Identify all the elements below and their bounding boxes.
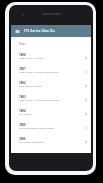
button[interactable]: 7401: [11, 65, 91, 79]
button[interactable]: 7403: [11, 93, 91, 107]
staticText: 7402: [19, 81, 26, 85]
button[interactable]: 7400: [11, 51, 91, 65]
staticText: Quad 2-input NAND gate, open collector: [19, 99, 59, 102]
staticText: 7400: [19, 53, 26, 57]
staticText: 7406: [19, 137, 26, 141]
staticText: Quad 2-input NAND gate: [19, 57, 44, 60]
button[interactable]: 7404: [11, 107, 91, 121]
staticText: 7403: [19, 95, 26, 99]
staticText: 7401: [19, 67, 26, 71]
staticText: Hex inverter buffer/driver: [19, 141, 45, 144]
staticText: TTL Series 74xx ICs: [24, 29, 55, 33]
staticText: 7405: [19, 123, 26, 127]
staticText: Hex inverter: [19, 113, 32, 116]
button[interactable]: 7402: [11, 79, 91, 93]
staticText: Quad 2-input NAND gate, open collector: [19, 71, 59, 74]
staticText: Hex inverter, open collector outputs: [19, 127, 55, 130]
staticText: Titles: [19, 42, 26, 46]
button[interactable]: 7406: [11, 135, 91, 149]
staticText: Quad 2-input NOR gate: [19, 85, 42, 88]
staticText: 7404: [19, 109, 26, 113]
button[interactable]: Open navigation drawer: [11, 25, 24, 37]
button[interactable]: 7405: [11, 121, 91, 135]
